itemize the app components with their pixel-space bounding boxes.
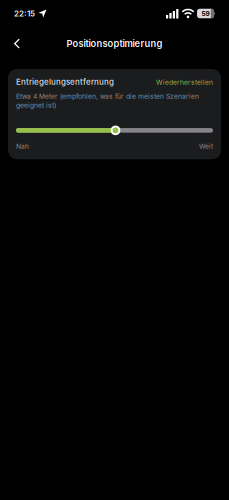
staticText: Wiederherstellen	[156, 78, 213, 86]
staticText: 22:15	[14, 9, 35, 18]
staticText: Weit	[199, 142, 213, 150]
staticText: Positionsoptimierung	[66, 38, 162, 49]
staticText: Etwa 4 Meter (empfohlen, was für die mei…	[16, 92, 199, 109]
staticText: 59	[201, 10, 209, 17]
button[interactable]: Back	[0, 32, 20, 54]
button[interactable]: Entriegelungsentfernung	[16, 125, 213, 135]
staticText: Entriegelungsentfernung	[16, 77, 114, 86]
staticText: Nah	[16, 142, 29, 150]
button[interactable]: Wiederherstellen	[156, 77, 213, 86]
